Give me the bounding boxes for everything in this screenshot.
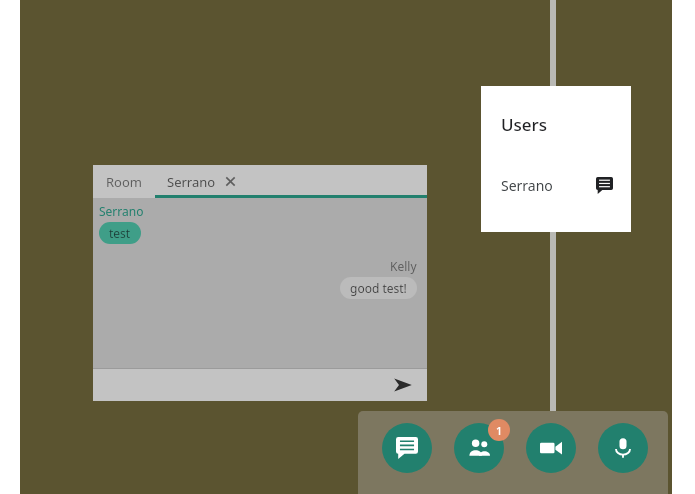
button[interactable]: Chat — [382, 423, 432, 473]
staticText: 1 — [496, 423, 503, 438]
staticText: good test! — [350, 280, 407, 296]
button[interactable]: Send — [379, 368, 427, 401]
staticText: Kelly — [390, 258, 417, 274]
button[interactable]: Camera — [526, 423, 576, 473]
staticText: Serrano — [501, 176, 553, 195]
staticText: Room — [106, 173, 142, 191]
staticText: Users — [501, 113, 548, 136]
button[interactable]: Participants — [454, 423, 504, 473]
staticText: Serrano — [167, 173, 216, 191]
button[interactable]: Microphone — [598, 423, 648, 473]
staticText: test — [109, 225, 131, 241]
staticText: Serrano — [99, 203, 144, 219]
button[interactable]: Room — [93, 165, 155, 198]
button[interactable]: Serrano — [481, 168, 631, 202]
button[interactable]: Serrano — [155, 165, 427, 198]
